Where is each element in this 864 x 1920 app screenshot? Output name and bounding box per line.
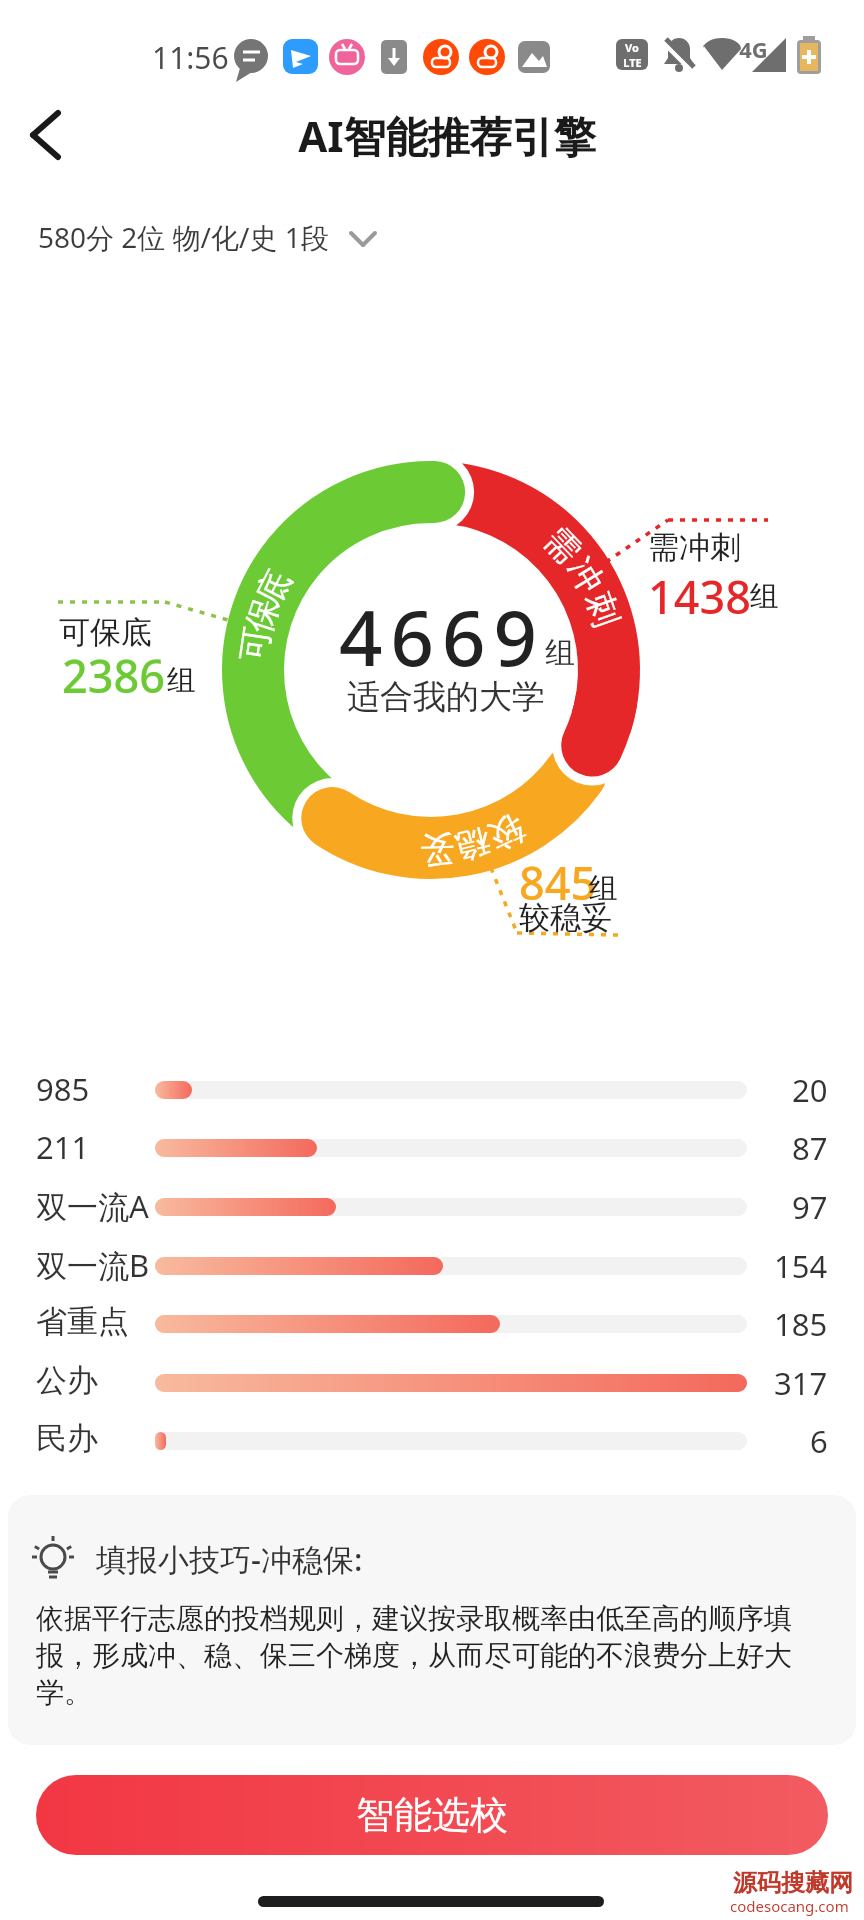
- staticText: 985: [36, 1068, 90, 1110]
- staticText: 底: [246, 563, 300, 613]
- staticText: 87: [792, 1127, 828, 1169]
- staticText: 民办: [36, 1419, 98, 1458]
- staticText: 稳: [451, 820, 494, 869]
- staticText: 317: [774, 1362, 828, 1404]
- staticText: 580分 2位 物/化/史 1段: [38, 218, 329, 256]
- staticText: 4669: [339, 585, 545, 675]
- staticText: 智能选校: [356, 1791, 508, 1839]
- staticText: 组: [545, 634, 575, 672]
- staticText: AI智能推荐引擎: [298, 107, 596, 164]
- staticText: 组: [750, 578, 779, 615]
- staticText: LTE: [623, 55, 642, 70]
- button[interactable]: [16, 100, 76, 170]
- staticText: 845: [519, 852, 597, 913]
- staticText: 1438: [648, 566, 751, 627]
- staticText: 4G: [739, 34, 768, 58]
- staticText: 组: [589, 870, 618, 907]
- button[interactable]: 580分 2位 物/化/史 1段: [30, 210, 390, 266]
- staticText: 可保底: [59, 613, 152, 652]
- button[interactable]: 智能选校: [36, 1775, 828, 1855]
- staticText: 填报小技巧-冲稳保:: [96, 1538, 363, 1580]
- staticText: 较: [482, 806, 531, 859]
- staticText: 冲: [558, 549, 613, 601]
- staticText: 刺: [577, 586, 628, 632]
- staticText: Vo: [625, 40, 639, 55]
- staticText: 双一流A: [36, 1185, 149, 1227]
- staticText: 211: [36, 1126, 90, 1168]
- staticText: 11:56: [152, 37, 229, 78]
- staticText: 6: [810, 1420, 828, 1462]
- staticText: 需冲刺: [648, 528, 741, 567]
- staticText: 保: [237, 592, 288, 638]
- staticText: 可: [232, 624, 279, 664]
- staticText: 154: [774, 1245, 828, 1287]
- staticText: 报，形成冲、稳、保三个梯度，从而尽可能的不浪费分上好大: [36, 1638, 792, 1673]
- staticText: 20: [792, 1069, 828, 1111]
- staticText: 97: [792, 1186, 828, 1228]
- staticText: 省重点: [36, 1302, 129, 1341]
- staticText: 适合我的大学: [347, 676, 545, 718]
- staticText: 185: [774, 1303, 828, 1345]
- staticText: 源码搜藏网: [733, 1868, 853, 1898]
- staticText: codesocang.com: [730, 1896, 849, 1916]
- staticText: 2386: [62, 645, 165, 706]
- staticText: 妥: [419, 827, 455, 872]
- staticText: 较稳妥: [519, 898, 612, 937]
- staticText: 组: [167, 662, 196, 699]
- staticText: 双一流B: [36, 1244, 150, 1286]
- staticText: 公办: [36, 1361, 98, 1400]
- staticText: 需: [535, 518, 590, 572]
- staticText: 依据平行志愿的投档规则，建议按录取概率由低至高的顺序填: [36, 1601, 792, 1636]
- staticText: 学。: [36, 1675, 92, 1710]
